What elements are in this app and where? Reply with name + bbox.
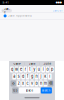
button[interactable]: w — [15, 66, 18, 72]
staticText: search — [42, 89, 51, 92]
button[interactable]: e — [19, 66, 23, 72]
button[interactable]: s — [17, 73, 20, 79]
button[interactable]: o — [46, 66, 49, 72]
button[interactable]: space — [19, 87, 40, 93]
button[interactable]: m — [43, 80, 47, 86]
staticText: Cancel — [52, 9, 62, 12]
button[interactable]: d — [21, 73, 25, 79]
staticText: b — [35, 81, 37, 86]
staticText: l — [49, 74, 50, 79]
staticText: ⇧ — [12, 81, 15, 85]
button[interactable]: c — [26, 80, 29, 86]
staticText: ⌫ — [49, 81, 53, 85]
button[interactable]: l — [48, 73, 52, 79]
staticText: k — [44, 74, 46, 79]
button[interactable]: f — [26, 73, 29, 79]
button[interactable]: a — [12, 73, 16, 79]
staticText: “Jane” — [13, 62, 21, 65]
button[interactable]: z — [17, 80, 20, 86]
staticText: x — [22, 81, 24, 86]
staticText: a — [13, 74, 15, 79]
button[interactable]: ⌫ — [48, 80, 53, 86]
staticText: e — [20, 67, 22, 72]
staticText: space — [25, 89, 33, 92]
staticText: r — [25, 67, 26, 72]
button[interactable]: n — [39, 80, 43, 86]
button[interactable]: search — [41, 87, 52, 93]
button[interactable]: g — [30, 73, 34, 79]
staticText: d — [22, 74, 24, 79]
button[interactable]: i — [41, 66, 45, 72]
staticText: h — [35, 74, 37, 79]
staticText: p — [51, 67, 53, 72]
staticText: m — [44, 81, 47, 86]
button[interactable]: Jane Appleseed — [0, 13, 64, 19]
staticText: s — [18, 74, 20, 79]
staticText: u — [38, 67, 40, 72]
staticText: Jane Appleseed — [8, 14, 32, 17]
button[interactable]: v — [30, 80, 34, 86]
staticText: f — [27, 74, 28, 79]
button[interactable]: k — [43, 73, 47, 79]
button[interactable]: Cancel — [52, 9, 64, 12]
button[interactable]: b — [35, 80, 38, 86]
staticText: o — [47, 67, 49, 72]
staticText: i — [43, 67, 44, 72]
button[interactable]: x — [21, 80, 25, 86]
button[interactable]: r — [23, 66, 27, 72]
staticText: g — [31, 74, 33, 79]
button[interactable]: u — [37, 66, 40, 72]
staticText: c — [27, 81, 29, 86]
staticText: ⌕ — [2, 9, 3, 12]
staticText: v — [31, 81, 33, 86]
staticText: q — [11, 67, 13, 72]
button[interactable]: t — [28, 66, 32, 72]
staticText: n — [40, 81, 42, 86]
button[interactable]: p — [50, 66, 54, 72]
button[interactable]: q — [10, 66, 14, 72]
staticText: y — [33, 67, 35, 72]
staticText: Jane — [29, 62, 36, 65]
button[interactable]: y — [32, 66, 36, 72]
staticText: 9:41 — [2, 1, 8, 4]
staticText: Jane — [4, 7, 10, 14]
button[interactable]: h — [35, 73, 38, 79]
staticText: t — [29, 67, 30, 72]
staticText: June — [43, 62, 51, 65]
staticText: z — [18, 81, 20, 86]
button[interactable]: ⇧ — [11, 80, 16, 86]
button[interactable]: j — [39, 73, 43, 79]
staticText: j — [40, 74, 41, 79]
staticText: w — [15, 67, 18, 72]
staticText: ●●● — [55, 1, 61, 4]
staticText: 123 — [13, 89, 18, 92]
button[interactable]: 123 — [12, 87, 18, 93]
